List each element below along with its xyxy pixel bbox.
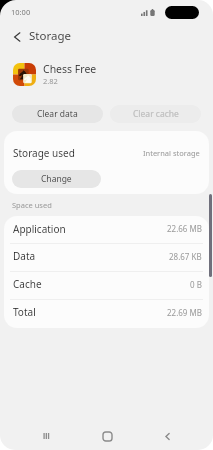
button[interactable]: Application [4,216,209,243]
button[interactable]: Home [93,422,121,450]
staticText: Total [13,305,36,319]
staticText: Internal storage [143,148,200,158]
staticText: 10:00 [11,7,31,17]
staticText: Application [13,222,66,236]
staticText: Clear cache [133,108,179,120]
button[interactable]: Clear data [12,105,103,123]
button[interactable]: Cache [4,271,209,299]
button[interactable]: Recent apps [32,422,60,450]
staticText: Change [41,173,72,185]
staticText: Space used [12,200,52,210]
button[interactable]: Total [4,299,209,327]
staticText: Chess Free [43,62,97,76]
button[interactable]: Back [10,30,23,43]
button[interactable]: Data [4,243,209,271]
staticText: Storage [29,28,71,44]
button[interactable]: Change [12,170,101,188]
staticText: 0 B [190,279,202,290]
button[interactable]: Clear cache [110,105,201,123]
staticText: Clear data [37,108,78,120]
staticText: Storage used [13,146,75,160]
staticText: 2.82 [43,76,58,86]
staticText: 28.67 KB [169,251,202,262]
staticText: 22.66 MB [167,223,202,234]
staticText: Data [13,249,36,263]
staticText: Cache [13,277,42,291]
staticText: 22.69 MB [167,307,202,318]
button[interactable]: Back [153,422,181,450]
